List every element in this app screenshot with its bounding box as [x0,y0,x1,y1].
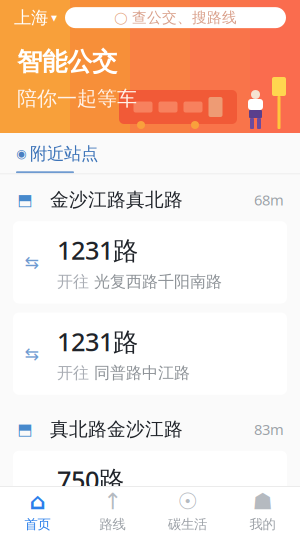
staticText: 开往 [57,272,89,292]
button[interactable]: 上海 [14,7,57,28]
button[interactable]: ⇆ [0,312,300,404]
staticText: ☗ [252,488,272,514]
staticText: ⇆ [24,482,39,502]
staticText: 附近站点 [30,143,98,164]
staticText: ↑ [103,488,122,514]
staticText: 1231路 [57,324,138,358]
staticText: 广顺路定威路 [94,501,190,521]
staticText: ▾ [51,11,57,24]
staticText: 路线 [99,516,125,533]
staticText: ⇆ [24,344,39,363]
staticText: 查公交、搜路线 [132,9,237,27]
button[interactable]: ☗ [225,481,300,533]
staticText: 68m [254,190,284,209]
staticText: 光复西路千阳南路 [94,272,222,292]
staticText: 83m [254,419,284,439]
staticText: 真北路金沙江路 [50,418,183,441]
staticText: ◯ [114,11,127,24]
staticText: ⬒ [17,191,32,209]
staticText: 碳生活 [168,516,207,533]
button[interactable]: ⌂ [0,481,75,533]
staticText: 上海 [14,7,48,28]
staticText: ⇆ [24,252,39,272]
button[interactable]: ◯ [65,7,286,28]
button[interactable]: ⇆ [0,221,300,312]
staticText: 开往 [57,363,89,383]
staticText: 智能公交 [17,46,117,77]
button[interactable]: ↑ [75,481,150,533]
staticText: 1231路 [57,233,138,267]
staticText: 陪你一起等车 [17,86,137,111]
staticText: 金沙江路真北路 [50,188,183,211]
staticText: 同普路中江路 [94,363,190,383]
button[interactable]: ⇆ [0,451,300,533]
staticText: 我的 [249,516,275,533]
staticText: ⬒ [17,420,32,438]
staticText: ◉ [16,147,26,160]
staticText: 首页 [24,516,50,533]
staticText: 750路 [57,463,124,496]
button[interactable]: ◉ [0,133,300,173]
staticText: ☉ [177,488,197,514]
button[interactable]: ☉ [150,481,225,533]
staticText: ⌂ [29,488,45,514]
